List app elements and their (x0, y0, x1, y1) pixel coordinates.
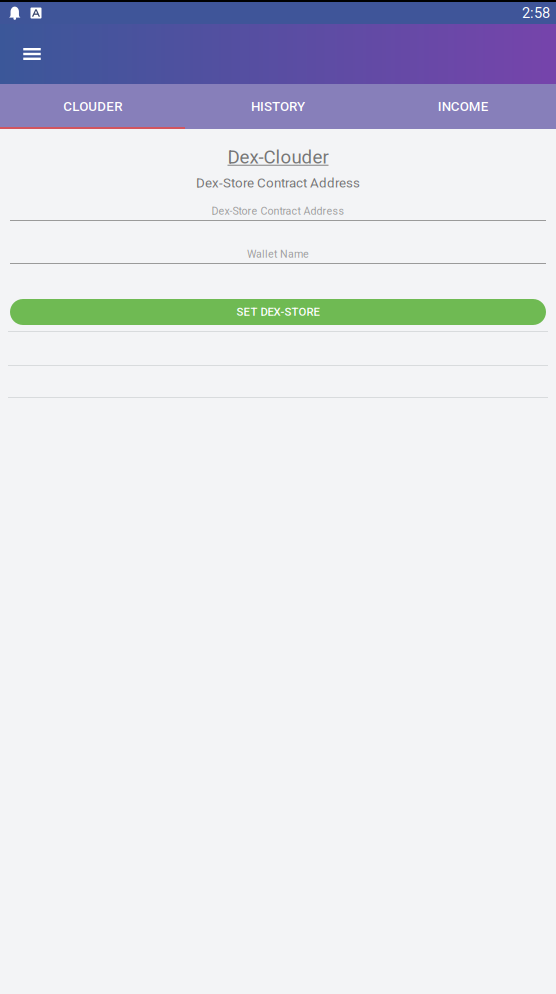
staticText: Dex-Clouder (227, 146, 328, 168)
button[interactable]: CLOUDER (0, 84, 185, 129)
button[interactable]: Open navigation menu (12, 34, 52, 74)
staticText: HISTORY (251, 99, 305, 114)
button[interactable]: SET DEX-STORE (0, 299, 556, 325)
staticText: Dex-Store Contract Address (211, 205, 344, 217)
staticText: Wallet Name (247, 248, 309, 260)
button[interactable]: INCOME (371, 84, 556, 129)
button[interactable]: Wallet Name (0, 245, 556, 264)
button[interactable]: Dex-Store Contract Address (0, 202, 556, 221)
staticText: CLOUDER (63, 99, 122, 114)
button[interactable]: HISTORY (185, 84, 371, 129)
staticText: Dex-Store Contract Address (196, 175, 360, 191)
staticText: INCOME (438, 99, 489, 114)
staticText: SET DEX-STORE (236, 305, 319, 319)
staticText: 2:58 (522, 4, 550, 22)
